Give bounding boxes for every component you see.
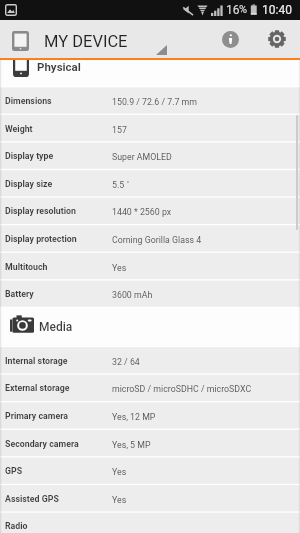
staticText: Display type bbox=[5, 151, 54, 161]
staticText: Corning Gorilla Glass 4 bbox=[112, 235, 202, 245]
button[interactable]: Display size bbox=[0, 169, 300, 197]
staticText: Display protection bbox=[5, 234, 77, 244]
staticText: 3600 mAh bbox=[112, 290, 153, 300]
button[interactable]: Internal storage bbox=[0, 346, 300, 374]
staticText: Radio bbox=[5, 521, 28, 531]
staticText: 1440 * 2560 px bbox=[112, 207, 172, 217]
button[interactable]: Weight bbox=[0, 114, 300, 142]
button[interactable]: Display resolution bbox=[0, 196, 300, 224]
staticText: Assisted GPS bbox=[5, 494, 59, 504]
button[interactable]: Physical bbox=[0, 60, 300, 86]
staticText: Display resolution bbox=[5, 206, 76, 216]
staticText: MY DEVICE bbox=[44, 32, 128, 51]
staticText: Battery bbox=[5, 289, 34, 299]
button[interactable]: Display type bbox=[0, 141, 300, 169]
button[interactable]: Settings bbox=[259, 20, 295, 58]
button[interactable]: Display protection bbox=[0, 224, 300, 252]
staticText: 32 / 64 bbox=[112, 357, 140, 367]
staticText: Weight bbox=[5, 124, 33, 134]
button[interactable]: Primary camera bbox=[0, 401, 300, 429]
button[interactable]: GPS bbox=[0, 456, 300, 484]
button[interactable]: Secondary camera bbox=[0, 429, 300, 457]
staticText: 10:40 bbox=[262, 3, 292, 17]
staticText: External storage bbox=[5, 383, 70, 393]
staticText: Secondary camera bbox=[5, 439, 79, 449]
staticText: Yes, 12 MP bbox=[112, 412, 156, 422]
button[interactable]: Multitouch bbox=[0, 252, 300, 280]
staticText: Super AMOLED bbox=[112, 152, 172, 162]
staticText: 150.9 / 72.6 / 7.7 mm bbox=[112, 97, 198, 107]
staticText: Internal storage bbox=[5, 356, 68, 366]
button[interactable]: Radio bbox=[0, 511, 300, 533]
button[interactable]: Info bbox=[212, 20, 248, 58]
staticText: % bbox=[239, 3, 248, 16]
staticText: Display size bbox=[5, 179, 53, 189]
button[interactable]: MY DEVICE bbox=[0, 20, 200, 58]
button[interactable]: Battery bbox=[0, 279, 300, 307]
button[interactable]: Media bbox=[0, 307, 300, 346]
button[interactable]: External storage bbox=[0, 373, 300, 401]
staticText: 157 bbox=[112, 125, 127, 135]
staticText: Dimensions bbox=[5, 96, 52, 106]
staticText: Physical bbox=[37, 60, 81, 73]
staticText: 16 bbox=[226, 3, 240, 17]
staticText: Multitouch bbox=[5, 262, 48, 272]
staticText: microSD / microSDHC / microSDXC bbox=[112, 384, 252, 394]
staticText: Primary camera bbox=[5, 411, 68, 421]
button[interactable]: Assisted GPS bbox=[0, 484, 300, 512]
staticText: Media bbox=[39, 320, 73, 334]
staticText: Yes bbox=[112, 263, 127, 273]
staticText: 5.5 ˚ bbox=[112, 180, 130, 190]
staticText: Yes, 5 MP bbox=[112, 440, 151, 450]
button[interactable]: Dimensions bbox=[0, 86, 300, 114]
staticText: Yes bbox=[112, 467, 127, 477]
staticText: Yes bbox=[112, 495, 127, 505]
staticText: GPS bbox=[5, 466, 23, 476]
